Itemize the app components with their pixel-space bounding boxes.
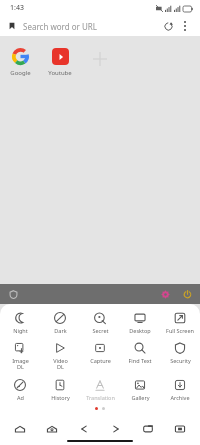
button[interactable]: History	[40, 378, 80, 402]
button[interactable]: Menu	[164, 417, 196, 445]
button[interactable]: Video DL	[40, 341, 80, 372]
button[interactable]: Translation	[80, 378, 120, 402]
button[interactable]: Night	[0, 311, 40, 335]
button[interactable]: Desktop	[120, 311, 160, 335]
button[interactable]: Security	[160, 341, 200, 365]
button[interactable]: Reload	[161, 19, 175, 33]
button[interactable]: Settings	[158, 287, 172, 301]
staticText: Security	[170, 357, 191, 364]
button[interactable]: Secret	[80, 311, 120, 335]
staticText: Night	[13, 327, 28, 334]
staticText: Youtube	[48, 69, 72, 77]
staticText: 1:43	[10, 3, 24, 13]
staticText: Dark	[54, 327, 67, 334]
staticText: Full Screen	[166, 327, 194, 334]
button[interactable]: Image DL	[0, 341, 40, 372]
button[interactable]: Full Screen	[160, 311, 200, 335]
button[interactable]: Ad	[0, 378, 40, 402]
button[interactable]: Home page	[36, 417, 68, 445]
staticText: Gallery	[131, 394, 150, 401]
staticText: Google	[10, 69, 31, 77]
staticText: Archive	[170, 394, 190, 401]
staticText: Search word or URL	[23, 21, 97, 32]
staticText: Secret	[92, 327, 109, 334]
staticText: Translation	[86, 394, 115, 401]
button[interactable]: Youtube	[40, 46, 80, 79]
staticText: Capture	[90, 357, 111, 364]
button[interactable]: Exit	[180, 287, 194, 301]
button[interactable]: Archive	[160, 378, 200, 402]
button[interactable]: Home	[4, 417, 36, 445]
button[interactable]: Bookmark	[0, 16, 200, 36]
button[interactable]: Google	[0, 46, 40, 79]
button[interactable]: Tabs	[132, 417, 164, 445]
button[interactable]: More options	[178, 19, 192, 33]
staticText: Ad	[17, 394, 24, 401]
button[interactable]: Protection	[6, 287, 20, 301]
button[interactable]: Dark	[40, 311, 80, 335]
button[interactable]: Capture	[80, 341, 120, 365]
staticText: Desktop	[129, 327, 151, 334]
button[interactable]: Back	[68, 417, 100, 445]
button[interactable]: Gallery	[120, 378, 160, 402]
button[interactable]: Forward	[100, 417, 132, 445]
staticText: Image DL	[12, 357, 29, 371]
staticText: Video DL	[53, 357, 68, 371]
staticText: Find Text	[128, 357, 152, 364]
other: Bookmark	[8, 22, 16, 30]
staticText: History	[51, 394, 70, 401]
button[interactable]: Find Text	[120, 341, 160, 365]
